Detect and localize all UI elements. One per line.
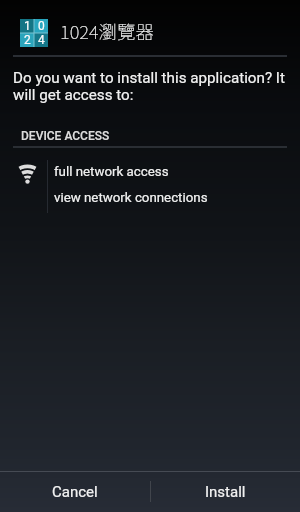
staticText: 1 <box>24 19 31 33</box>
staticText: 2 <box>24 33 31 47</box>
staticText: 4 <box>38 33 45 47</box>
staticText: view network connections <box>54 190 208 206</box>
staticText: full network access <box>54 164 169 180</box>
staticText: Do you want to install this application?… <box>13 69 289 104</box>
staticText: 0 <box>38 19 45 33</box>
staticText: DEVICE ACCESS <box>21 129 110 143</box>
staticText: Cancel <box>52 483 98 501</box>
button[interactable]: Cancel <box>0 471 150 512</box>
staticText: 1024瀏覽器 <box>60 18 155 45</box>
staticText: Install <box>205 483 246 501</box>
button[interactable]: Install <box>150 471 300 512</box>
